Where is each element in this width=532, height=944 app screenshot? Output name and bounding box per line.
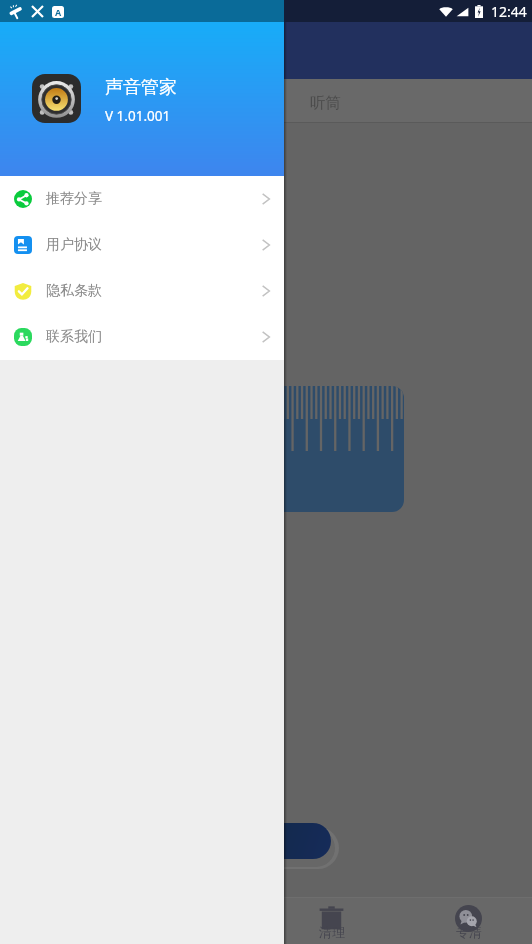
staticText: 清理 — [319, 924, 345, 940]
staticText: 用户协议 — [46, 236, 102, 254]
button[interactable]: 用户协议 — [0, 222, 284, 268]
staticText: 隐私条款 — [46, 282, 102, 300]
staticText: 12:44 — [491, 2, 527, 21]
button[interactable]: 声音管家 — [0, 0, 284, 176]
button[interactable]: 关闭菜单 — [284, 0, 532, 944]
staticText: 听筒 — [310, 93, 341, 113]
button[interactable]: 一键清理灰尘 — [119, 823, 331, 859]
staticText: 专清 — [456, 924, 482, 940]
button[interactable]: 专清 — [399, 898, 532, 944]
button[interactable]: 推荐分享 — [0, 176, 284, 222]
staticText: 推荐分享 — [46, 190, 102, 208]
staticText: 声音管家 — [105, 76, 177, 99]
staticText: A — [55, 6, 62, 18]
button[interactable]: 清理 — [266, 898, 399, 944]
other: 清理 — [8, 4, 23, 19]
button[interactable]: 隐私条款 — [0, 268, 284, 314]
staticText: V 1.01.001 — [105, 107, 171, 125]
button[interactable]: 听筒 — [290, 79, 352, 122]
other: 关闭 — [30, 4, 45, 19]
button[interactable]: 联系我们 — [0, 314, 284, 360]
staticText: 联系我们 — [46, 328, 102, 346]
